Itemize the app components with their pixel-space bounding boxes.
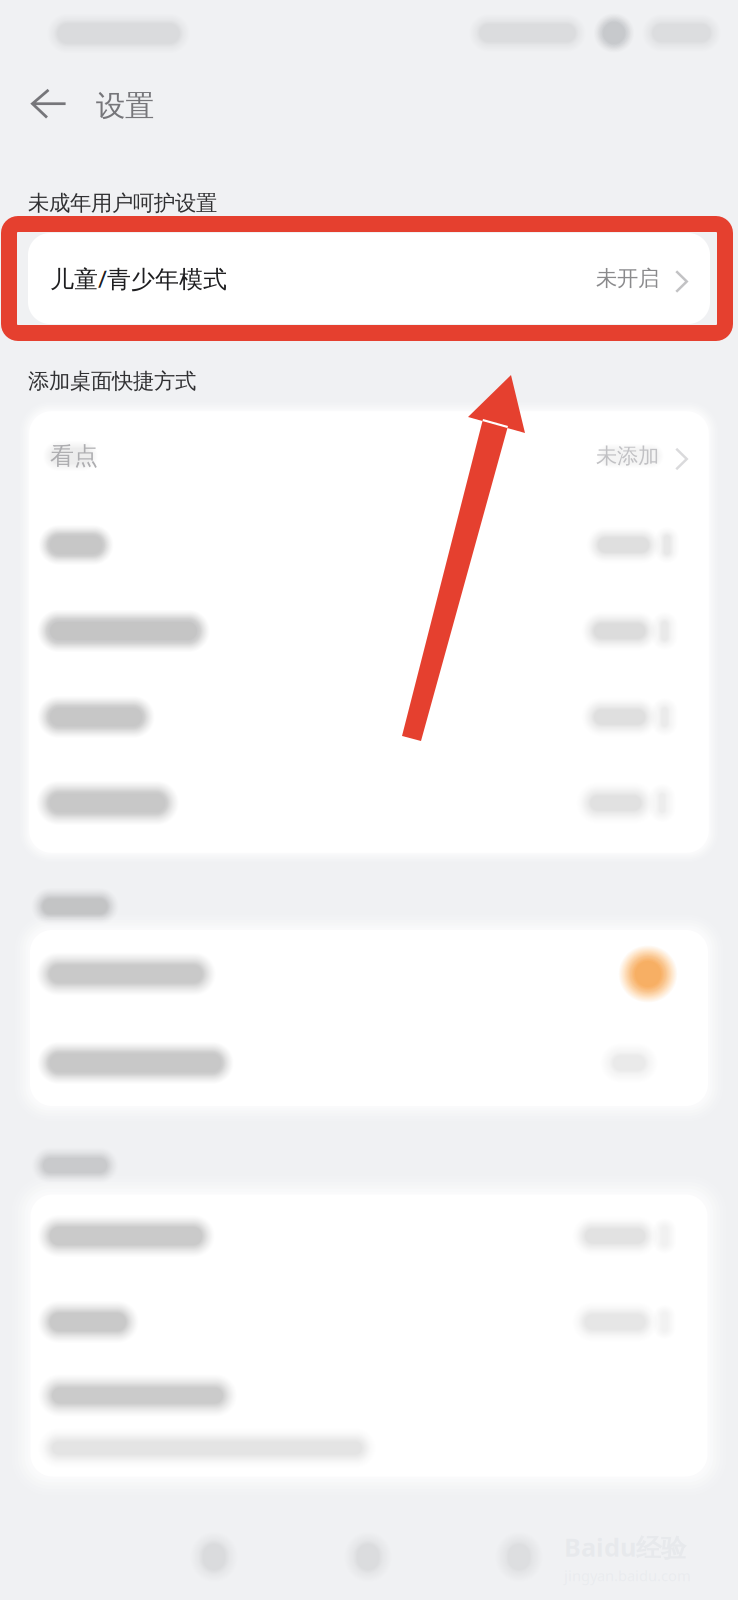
button[interactable] bbox=[28, 502, 710, 588]
staticText: 看点 bbox=[50, 441, 98, 471]
staticText: 未添加 bbox=[596, 443, 659, 469]
button[interactable] bbox=[28, 588, 710, 674]
button[interactable] bbox=[28, 1020, 710, 1106]
staticText: 未成年用户呵护设置 bbox=[28, 190, 217, 216]
button[interactable] bbox=[28, 760, 710, 846]
staticText: 儿童/青少年模式 bbox=[50, 263, 227, 294]
button[interactable]: Profile bbox=[480, 1528, 558, 1586]
staticText: 设置 bbox=[96, 88, 154, 124]
button[interactable]: 看点 bbox=[28, 410, 710, 502]
button[interactable] bbox=[28, 674, 710, 760]
button[interactable] bbox=[28, 928, 710, 1020]
button[interactable]: Back bbox=[15, 73, 83, 135]
staticText: 添加桌面快捷方式 bbox=[28, 368, 196, 394]
button[interactable]: Videos bbox=[329, 1528, 407, 1586]
button[interactable] bbox=[28, 1192, 710, 1280]
button[interactable] bbox=[28, 1280, 710, 1364]
staticText: Baidu经验 bbox=[564, 1530, 686, 1564]
button[interactable]: Home bbox=[175, 1528, 253, 1586]
staticText: 未开启 bbox=[596, 265, 659, 292]
button[interactable]: 儿童/青少年模式 bbox=[28, 233, 710, 324]
